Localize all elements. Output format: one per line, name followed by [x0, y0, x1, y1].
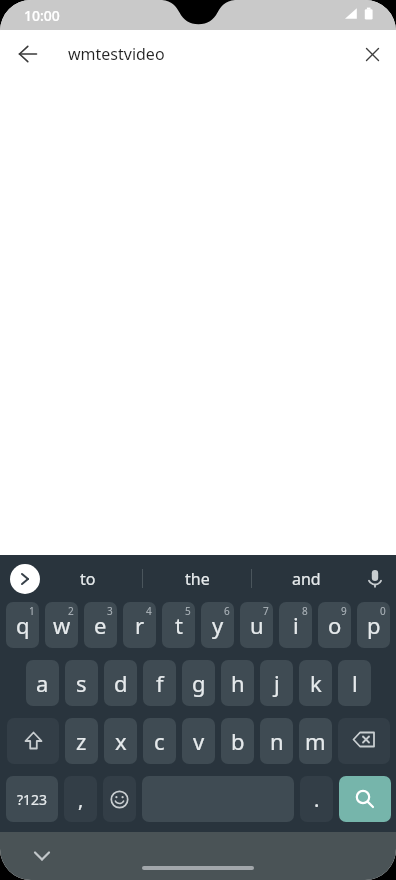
staticText: . [314, 786, 320, 813]
staticText: s [76, 668, 87, 698]
staticText: i [293, 610, 299, 640]
button[interactable]: l [338, 660, 371, 706]
staticText: wmtestvideo [68, 43, 165, 65]
staticText: p [367, 610, 381, 640]
button[interactable]: z [65, 718, 98, 764]
button[interactable]: f [143, 660, 176, 706]
button[interactable] [338, 718, 390, 764]
button[interactable]: q [6, 602, 39, 648]
button[interactable]: t [162, 602, 195, 648]
staticText: 6 [224, 604, 230, 618]
staticText: u [250, 610, 264, 640]
staticText: w [53, 610, 71, 640]
button[interactable]: b [221, 718, 254, 764]
staticText: 2 [68, 604, 74, 618]
button[interactable] [142, 866, 254, 870]
staticText: v [193, 726, 205, 756]
button[interactable]: j [260, 660, 293, 706]
button[interactable]: x [104, 718, 137, 764]
button[interactable]: n [260, 718, 293, 764]
button[interactable]: r [123, 602, 156, 648]
button[interactable]: s [65, 660, 98, 706]
staticText: f [156, 668, 164, 698]
button[interactable]: , [64, 776, 97, 822]
staticText: and [292, 568, 321, 590]
staticText: 8 [302, 604, 308, 618]
button[interactable] [10, 564, 40, 594]
staticText: t [175, 610, 183, 640]
button[interactable]: h [221, 660, 254, 706]
button[interactable] [352, 34, 392, 74]
button[interactable]: w [45, 602, 78, 648]
button[interactable]: p [357, 602, 390, 648]
staticText: a [36, 668, 49, 698]
staticText: r [135, 610, 145, 640]
staticText: 5 [185, 604, 191, 618]
staticText: to [80, 568, 96, 590]
button[interactable]: the [143, 555, 251, 602]
staticText: x [115, 726, 127, 756]
staticText: o [328, 610, 342, 640]
staticText: the [185, 568, 210, 590]
staticText: j [274, 668, 280, 698]
staticText: h [231, 668, 245, 698]
staticText: , [78, 786, 84, 813]
button[interactable]: m [299, 718, 332, 764]
button[interactable]: d [104, 660, 137, 706]
button[interactable]: . [300, 776, 333, 822]
staticText: m [305, 726, 326, 756]
button[interactable]: ?123 [6, 776, 58, 822]
staticText: 9 [341, 604, 347, 618]
button[interactable] [103, 776, 136, 822]
staticText: d [114, 668, 128, 698]
button[interactable]: g [182, 660, 215, 706]
staticText: y [212, 610, 224, 640]
staticText: 4 [146, 604, 152, 618]
button[interactable]: a [26, 660, 59, 706]
button[interactable]: o [318, 602, 351, 648]
staticText: 0 [380, 604, 386, 618]
staticText: b [231, 726, 245, 756]
button[interactable]: e [84, 602, 117, 648]
button[interactable] [339, 776, 391, 822]
staticText: 3 [107, 604, 113, 618]
staticText: e [94, 610, 107, 640]
button[interactable] [26, 840, 58, 872]
button[interactable]: v [182, 718, 215, 764]
button[interactable]: k [299, 660, 332, 706]
button[interactable] [360, 564, 390, 594]
staticText: ?123 [17, 790, 48, 809]
button[interactable]: i [279, 602, 312, 648]
staticText: 10:00 [24, 6, 60, 25]
button[interactable]: to [34, 555, 142, 602]
staticText: g [192, 668, 206, 698]
staticText: k [310, 668, 322, 698]
button[interactable]: c [143, 718, 176, 764]
staticText: c [154, 726, 165, 756]
staticText: z [76, 726, 87, 756]
button[interactable]: u [240, 602, 273, 648]
staticText: 7 [263, 604, 269, 618]
staticText: q [16, 610, 30, 640]
staticText: n [270, 726, 284, 756]
button[interactable] [8, 34, 48, 74]
button[interactable]: and [252, 555, 360, 602]
staticText: 1 [29, 604, 35, 618]
staticText: l [352, 668, 358, 698]
button[interactable] [7, 718, 59, 764]
button[interactable]: y [201, 602, 234, 648]
